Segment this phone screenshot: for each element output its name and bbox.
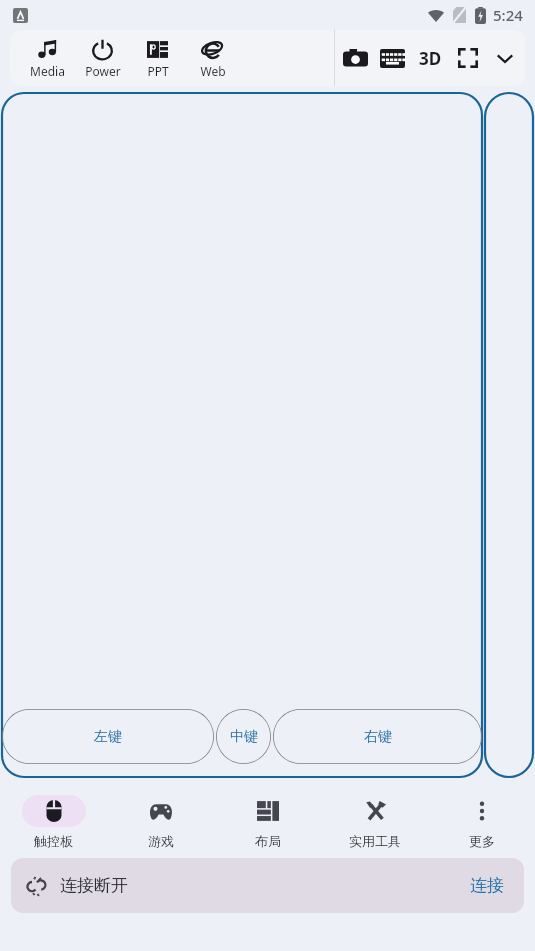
staticText: 游戏 xyxy=(148,833,174,849)
button[interactable]: Scroll bar xyxy=(485,93,533,777)
staticText: 实用工具 xyxy=(349,833,401,849)
staticText: PPT xyxy=(147,63,169,79)
staticText: Power xyxy=(85,63,121,79)
button[interactable]: 左键 xyxy=(2,709,214,764)
staticText: 中键 xyxy=(230,728,258,746)
button[interactable]: 连接 xyxy=(464,869,510,902)
staticText: 触控板 xyxy=(34,833,73,849)
button[interactable]: 布局 xyxy=(214,786,321,858)
staticText: 连接 xyxy=(470,875,504,896)
staticText: 布局 xyxy=(255,833,281,849)
staticText: 3D xyxy=(419,47,442,70)
staticText: 连接断开 xyxy=(60,875,128,896)
button[interactable]: 触控板 xyxy=(0,786,107,858)
button[interactable]: 游戏 xyxy=(107,786,214,858)
staticText: 左键 xyxy=(94,728,122,746)
button[interactable]: 3D xyxy=(412,40,448,76)
button[interactable]: Web xyxy=(185,30,240,86)
button[interactable]: Media xyxy=(20,30,75,86)
button[interactable]: Collapse xyxy=(487,40,523,76)
button[interactable]: Camera xyxy=(337,40,373,76)
button[interactable]: 中键 xyxy=(216,709,271,764)
staticText: Web xyxy=(200,63,226,79)
button[interactable]: Fullscreen xyxy=(450,40,486,76)
button[interactable]: 实用工具 xyxy=(321,786,428,858)
button[interactable]: Power xyxy=(75,30,130,86)
button[interactable]: 右键 xyxy=(273,709,482,764)
staticText: 更多 xyxy=(469,833,495,849)
button[interactable]: PPT xyxy=(130,30,185,86)
button[interactable]: Touchpad xyxy=(2,93,482,693)
staticText: 右键 xyxy=(364,728,392,746)
staticText: 5:24 xyxy=(493,5,523,25)
button[interactable]: 更多 xyxy=(428,786,535,858)
button[interactable]: Keyboard xyxy=(374,40,410,76)
button[interactable]: 连接断开 xyxy=(11,858,524,913)
staticText: Media xyxy=(30,63,65,79)
